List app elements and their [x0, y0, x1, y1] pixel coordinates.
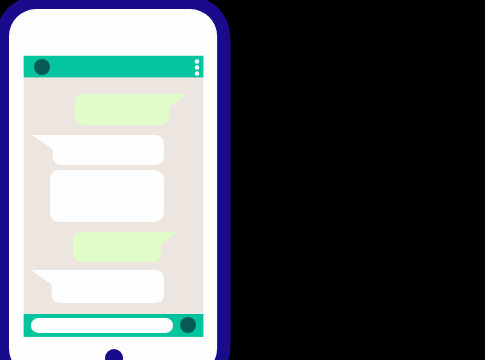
- button[interactable]: Sent message: [73, 232, 177, 262]
- button[interactable]: Received message: [50, 170, 164, 222]
- button[interactable]: More options: [189, 56, 204, 78]
- button[interactable]: Send message: [180, 317, 196, 333]
- button[interactable]: Received message: [31, 270, 164, 303]
- button[interactable]: Message input field: [31, 318, 173, 333]
- button[interactable]: Sent message: [75, 94, 187, 125]
- button[interactable]: Received message: [32, 135, 164, 165]
- button[interactable]: Home: [105, 349, 123, 360]
- button[interactable]: Contact avatar: [34, 59, 50, 75]
